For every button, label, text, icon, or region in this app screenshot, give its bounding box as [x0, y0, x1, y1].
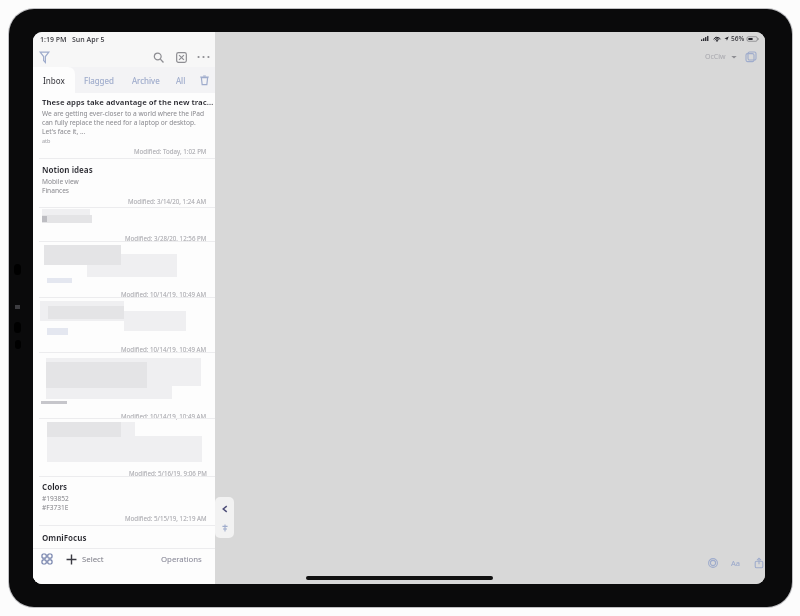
- staticText: Modified: 3/14/20, 1:24 AM: [128, 197, 207, 205]
- button[interactable]: Modified: 10/14/19, 10:49 AM: [33, 352, 215, 418]
- staticText: Modified: 10/14/19, 10:49 AM: [121, 412, 207, 420]
- staticText: atb: [42, 137, 51, 144]
- button[interactable]: Operations: [161, 551, 202, 567]
- button[interactable]: Window options: [745, 51, 757, 63]
- button[interactable]: Close search: [173, 49, 189, 65]
- staticText: Flagged: [84, 75, 114, 86]
- button[interactable]: Inbox: [33, 67, 75, 93]
- staticText: Finances: [42, 186, 70, 195]
- button[interactable]: OmniFocus: [33, 525, 215, 580]
- staticText: Select: [82, 554, 104, 565]
- staticText: Modified: 5/16/19, 9:06 PM: [129, 469, 207, 477]
- staticText: Modified: 10/14/19, 10:49 AM: [121, 290, 207, 298]
- staticText: Notion ideas: [42, 164, 93, 175]
- button[interactable]: These apps take advantage of the new tra…: [33, 93, 215, 158]
- staticText: 1:19 PM: [40, 35, 67, 45]
- button[interactable]: Share: [751, 555, 765, 570]
- staticText: Sun Apr 5: [72, 35, 105, 45]
- staticText: #193852: [42, 494, 69, 503]
- staticText: Let's face it, …: [42, 127, 86, 136]
- button[interactable]: Trash: [194, 67, 214, 93]
- button[interactable]: Document menu: [729, 52, 739, 62]
- staticText: OcCiw: [705, 52, 726, 62]
- button[interactable]: Notion ideas: [33, 158, 215, 207]
- staticText: Aa: [731, 558, 740, 568]
- button[interactable]: New note: [63, 551, 79, 567]
- button[interactable]: Modified: 5/16/19, 9:06 PM: [33, 418, 215, 476]
- button[interactable]: Filter: [36, 49, 52, 65]
- staticText: #F3731E: [42, 503, 69, 512]
- staticText: Modified: 3/28/20, 12:56 PM: [125, 234, 207, 242]
- button[interactable]: Colors: [33, 476, 215, 525]
- staticText: Operations: [161, 554, 202, 565]
- staticText: can fully replace the need for a laptop …: [42, 118, 196, 127]
- button[interactable]: More options: [195, 49, 211, 65]
- button[interactable]: Gallery view: [39, 551, 55, 567]
- staticText: Colors: [42, 481, 68, 492]
- button[interactable]: Select: [82, 551, 104, 567]
- staticText: We are getting ever-closer to a world wh…: [42, 109, 205, 118]
- button[interactable]: Timer: [705, 555, 720, 570]
- button[interactable]: All: [165, 67, 197, 93]
- staticText: Mobile view: [42, 177, 79, 186]
- staticText: OmniFocus: [42, 532, 87, 543]
- staticText: Modified: Today, 1:02 PM: [134, 147, 207, 155]
- staticText: All: [176, 75, 186, 86]
- staticText: Modified: 10/14/19, 10:49 AM: [121, 345, 207, 353]
- button[interactable]: Flagged: [75, 67, 123, 93]
- staticText: Archive: [132, 75, 160, 86]
- button[interactable]: Modified: 10/14/19, 10:49 AM: [33, 297, 215, 352]
- staticText: These apps take advantage of the new tra…: [42, 97, 215, 107]
- staticText: Inbox: [43, 75, 65, 86]
- button[interactable]: Archive: [123, 67, 169, 93]
- button[interactable]: Modified: 10/14/19, 10:49 AM: [33, 241, 215, 297]
- button[interactable]: Aa: [728, 555, 743, 570]
- button[interactable]: Expand sidebar: [215, 497, 234, 538]
- staticText: 56%: [731, 34, 745, 43]
- staticText: Modified: 5/15/19, 12:19 AM: [125, 514, 207, 522]
- button[interactable]: Search: [150, 49, 166, 65]
- button[interactable]: Modified: 3/28/20, 12:56 PM: [33, 207, 215, 241]
